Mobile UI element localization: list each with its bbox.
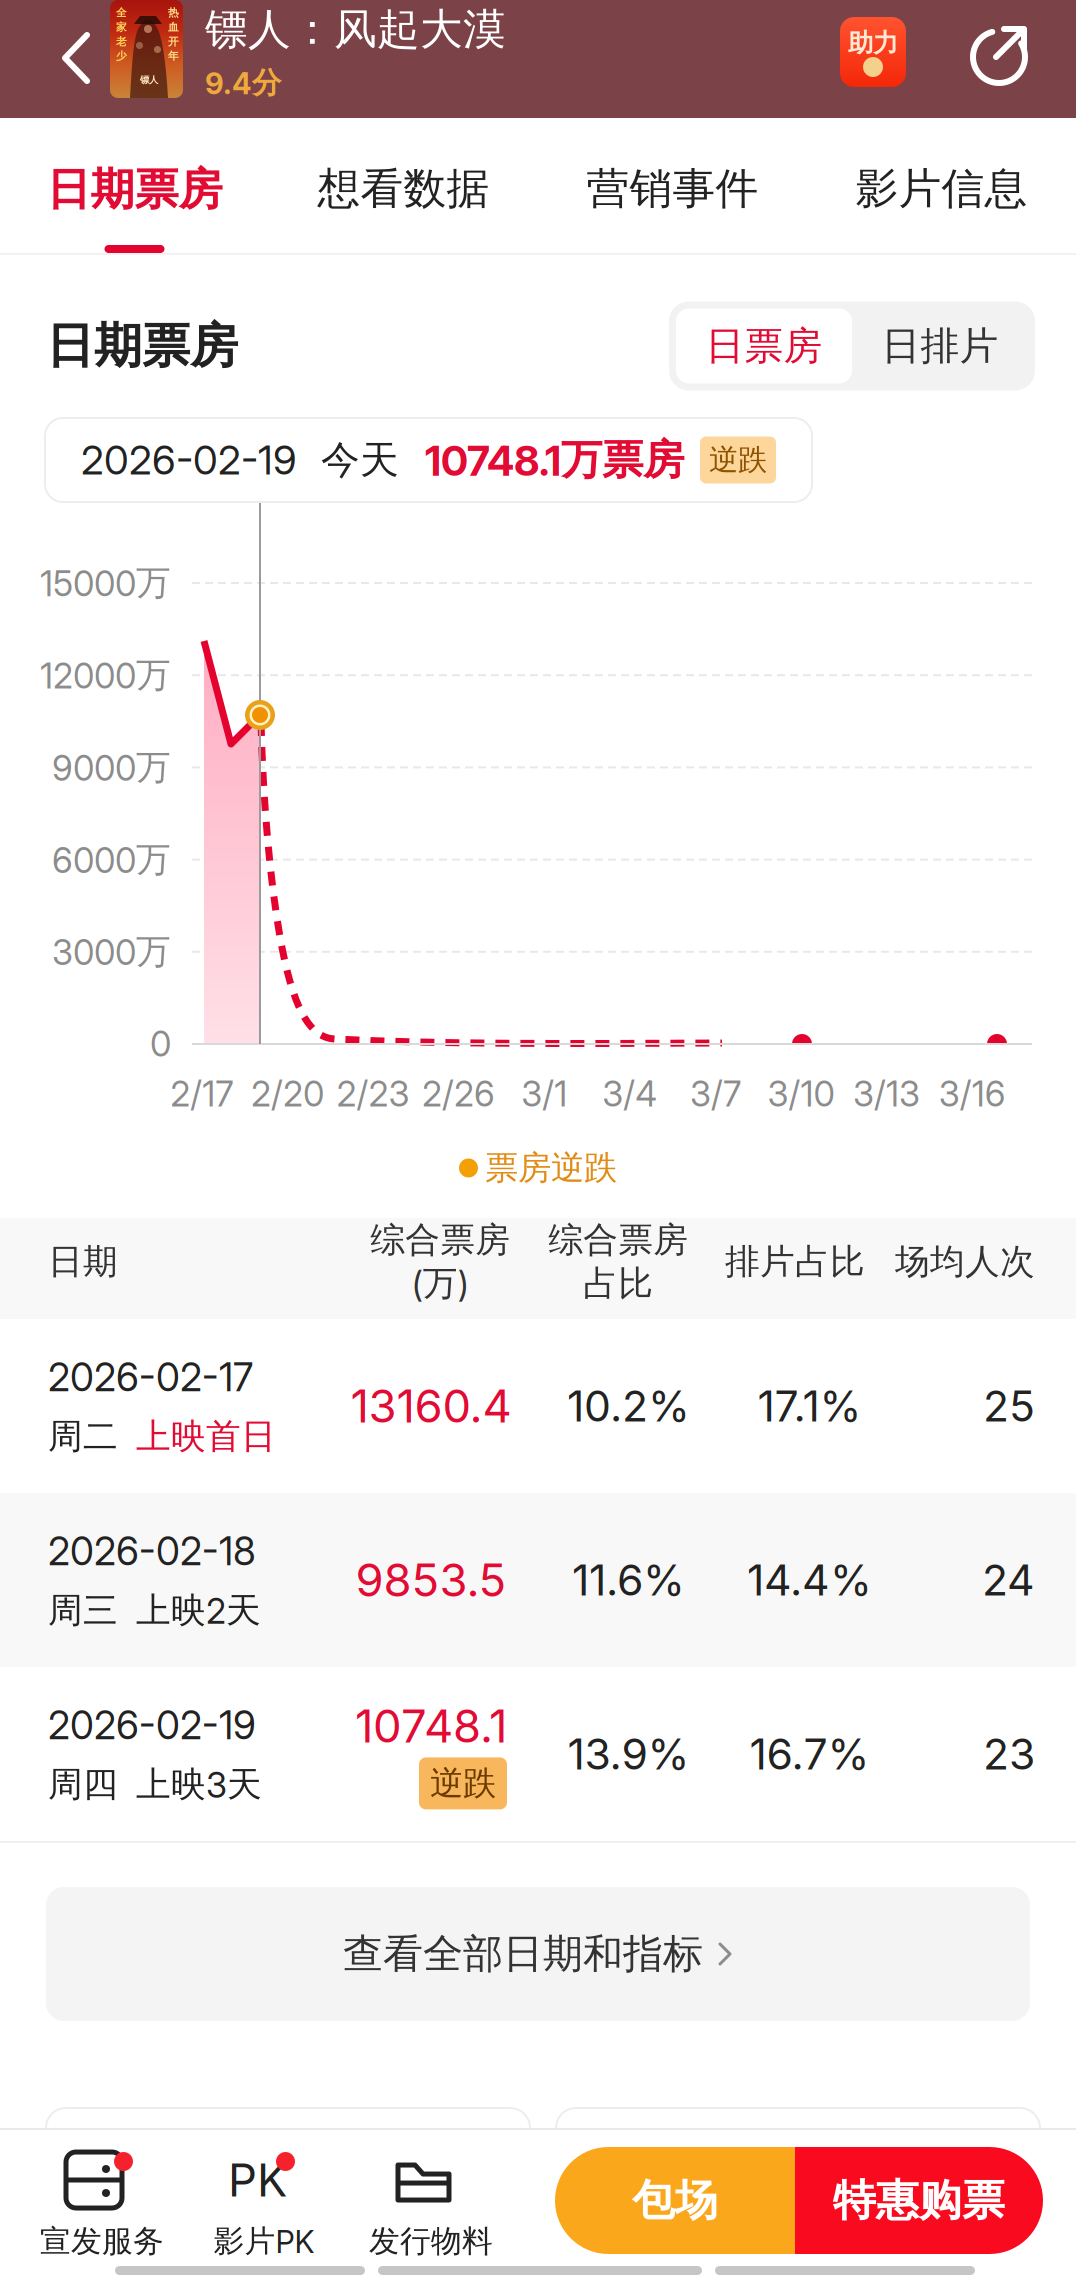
button[interactable]: 日票房 bbox=[676, 308, 852, 383]
staticText: 营销事件 bbox=[586, 162, 758, 216]
staticText: 镖人 bbox=[140, 74, 158, 86]
button[interactable]: 特惠购票 bbox=[795, 2147, 1043, 2254]
staticText: 14.4% bbox=[747, 1554, 872, 1606]
button[interactable]: 宣发服务 bbox=[21, 2130, 183, 2258]
staticText: 上映2天 bbox=[136, 1589, 261, 1632]
staticText: 11.6% bbox=[572, 1554, 685, 1606]
button[interactable]: 助力 bbox=[840, 17, 906, 87]
button[interactable]: 分享 bbox=[906, 21, 1076, 83]
staticText: 13.9% bbox=[567, 1728, 689, 1780]
staticText: 周二 bbox=[48, 1415, 118, 1458]
staticText: 17.1% bbox=[757, 1380, 861, 1432]
staticText: 23 bbox=[983, 1728, 1035, 1780]
staticText: 热 bbox=[168, 6, 179, 19]
staticText: 血 bbox=[168, 20, 179, 34]
button[interactable]: 2026-02-17 bbox=[0, 1319, 1076, 1493]
staticText: 3/7 bbox=[690, 1073, 741, 1115]
staticText: 日期 bbox=[48, 1240, 118, 1283]
staticText: 2/23 bbox=[336, 1073, 409, 1115]
staticText: 16.7% bbox=[749, 1728, 869, 1780]
staticText: 6000万 bbox=[52, 838, 171, 881]
button[interactable]: 影片信息 bbox=[807, 118, 1076, 253]
staticText: 查看全部日期和指标 bbox=[343, 1929, 703, 1979]
button[interactable]: 日排片 bbox=[852, 308, 1028, 383]
staticText: 0 bbox=[150, 1023, 171, 1065]
staticText: 3/10 bbox=[767, 1073, 834, 1115]
staticText: 逆跌 bbox=[709, 441, 767, 478]
button[interactable]: 发行物料 bbox=[350, 2130, 512, 2258]
staticText: 发行物料 bbox=[369, 2222, 493, 2261]
staticText: 10748.1万票房 bbox=[425, 434, 684, 486]
staticText: 场均人次 bbox=[895, 1240, 1035, 1283]
staticText: 排片占比 bbox=[725, 1240, 865, 1283]
staticText: 镖人：风起大漠 bbox=[205, 3, 506, 56]
staticText: 宣发服务 bbox=[40, 2222, 164, 2261]
staticText: 15000万 bbox=[40, 561, 171, 605]
staticText: 日期票房 bbox=[46, 162, 222, 217]
staticText: 13160.4 bbox=[350, 1379, 511, 1433]
staticText: 9000万 bbox=[52, 746, 171, 789]
staticText: 今天 bbox=[321, 436, 399, 484]
staticText: 3/13 bbox=[853, 1073, 920, 1115]
staticText: 周四 bbox=[48, 1763, 118, 1806]
staticText: 综合票房 (万) bbox=[370, 1218, 510, 1305]
staticText: 想看数据 bbox=[317, 162, 489, 216]
staticText: 25 bbox=[983, 1380, 1035, 1432]
staticText: 助力 bbox=[848, 27, 898, 59]
button[interactable]: 2026-02-18 bbox=[0, 1493, 1076, 1667]
staticText: 3/1 bbox=[521, 1073, 567, 1115]
button[interactable]: 查看全部日期和指标 bbox=[0, 1843, 1076, 2021]
staticText: 少 bbox=[116, 49, 127, 63]
staticText: 2/17 bbox=[170, 1073, 233, 1115]
button[interactable]: 营销事件 bbox=[538, 118, 807, 253]
button[interactable]: PK bbox=[183, 2130, 345, 2258]
staticText: 全 bbox=[116, 6, 127, 19]
staticText: 3/4 bbox=[602, 1073, 657, 1115]
button[interactable]: 2026-02-19 bbox=[0, 1667, 1076, 1841]
staticText: 2026-02-19 bbox=[48, 1702, 256, 1749]
staticText: 10748.1 bbox=[355, 1699, 507, 1753]
staticText: 2/26 bbox=[422, 1073, 495, 1115]
staticText: 上映3天 bbox=[136, 1763, 262, 1806]
staticText: 票房逆跌 bbox=[485, 1147, 617, 1189]
staticText: 影片PK bbox=[213, 2222, 314, 2261]
staticText: 特惠购票 bbox=[833, 2174, 1005, 2227]
staticText: 2026-02-17 bbox=[48, 1354, 253, 1401]
staticText: 10.2% bbox=[567, 1380, 690, 1432]
staticText: 影片信息 bbox=[855, 162, 1027, 216]
staticText: 24 bbox=[982, 1554, 1035, 1606]
staticText: 2026-02-19 bbox=[81, 436, 297, 484]
staticText: 12000万 bbox=[40, 653, 171, 697]
staticText: 上映首日 bbox=[136, 1415, 276, 1458]
staticText: 包场 bbox=[632, 2174, 718, 2227]
staticText: 开 bbox=[168, 35, 179, 48]
staticText: PK bbox=[228, 2153, 287, 2207]
staticText: 2/20 bbox=[251, 1073, 324, 1115]
staticText: 日期票房 bbox=[46, 316, 238, 376]
button[interactable]: 日期票房 bbox=[0, 118, 269, 253]
button[interactable]: 包场 bbox=[555, 2147, 795, 2254]
staticText: 9.4分 bbox=[205, 64, 281, 101]
staticText: 2026-02-18 bbox=[48, 1528, 256, 1575]
staticText: 日票房 bbox=[705, 322, 822, 370]
button[interactable]: 返回 bbox=[0, 30, 110, 88]
staticText: 家 bbox=[116, 20, 127, 34]
staticText: 逆跌 bbox=[430, 1762, 496, 1804]
staticText: 3/16 bbox=[939, 1073, 1006, 1115]
button[interactable]: 想看数据 bbox=[269, 118, 538, 253]
staticText: 周三 bbox=[48, 1589, 118, 1632]
staticText: 老 bbox=[116, 35, 127, 48]
staticText: 年 bbox=[168, 49, 179, 63]
staticText: 3000万 bbox=[52, 930, 171, 974]
staticText: 日排片 bbox=[881, 322, 998, 370]
staticText: 9853.5 bbox=[355, 1553, 506, 1607]
staticText: 综合票房 占比 bbox=[548, 1218, 688, 1305]
